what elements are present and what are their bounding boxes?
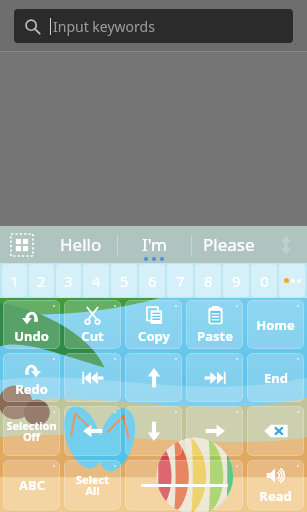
button[interactable]: Space: [125, 460, 243, 510]
button[interactable]: 1: [2, 264, 27, 297]
button[interactable]: Search: [14, 9, 293, 43]
staticText: Paste: [197, 327, 233, 345]
button[interactable]: ABC: [3, 460, 60, 510]
button[interactable]: Keyboard modes: [0, 226, 44, 263]
button[interactable]: 3: [56, 264, 81, 297]
button[interactable]: 5: [111, 264, 137, 297]
button[interactable]: Paste: [186, 300, 243, 349]
staticText: Selection Off: [6, 418, 57, 445]
other: Search: [24, 18, 41, 35]
button[interactable]: 7: [167, 264, 193, 297]
staticText: Home: [256, 316, 295, 334]
button[interactable]: Cut: [64, 300, 121, 349]
staticText: Copy: [138, 327, 170, 345]
button[interactable]: Selection Off: [3, 406, 60, 456]
button[interactable]: Home: [247, 300, 304, 349]
button[interactable]: Copy: [125, 300, 182, 349]
staticText: 2: [37, 271, 46, 291]
staticText: I'm: [142, 233, 167, 256]
button[interactable]: Read: [247, 460, 304, 510]
button[interactable]: Right: [186, 406, 243, 456]
staticText: 0: [260, 271, 269, 291]
staticText: Undo: [14, 327, 49, 345]
button[interactable]: End: [247, 353, 304, 402]
button[interactable]: Up: [125, 353, 182, 402]
button[interactable]: 4: [83, 264, 109, 297]
staticText: 8: [204, 271, 213, 291]
button[interactable]: 8: [195, 264, 221, 297]
staticText: 1: [10, 271, 19, 291]
button[interactable]: Down: [125, 406, 182, 456]
staticText: Hello: [60, 233, 102, 256]
button[interactable]: 2: [29, 264, 54, 297]
button[interactable]: Left: [64, 406, 121, 456]
staticText: 7: [176, 271, 185, 291]
staticText: Read: [259, 487, 292, 505]
staticText: 9: [232, 271, 241, 291]
staticText: 5: [120, 271, 129, 291]
button[interactable]: More: [279, 264, 305, 297]
staticText: Cut: [81, 327, 104, 345]
button[interactable]: 9: [223, 264, 249, 297]
staticText: Redo: [15, 380, 48, 398]
staticText: 3: [64, 271, 73, 291]
button[interactable]: Skip backward: [64, 353, 121, 402]
staticText: 4: [92, 271, 101, 291]
button[interactable]: Hello: [44, 226, 117, 263]
button[interactable]: Delete: [247, 406, 304, 456]
button[interactable]: Expand suggestions: [265, 226, 307, 263]
button[interactable]: Please: [192, 226, 265, 263]
button[interactable]: 0: [251, 264, 277, 297]
button[interactable]: Skip forward: [186, 353, 243, 402]
button[interactable]: 6: [139, 264, 165, 297]
button[interactable]: Redo: [3, 353, 60, 402]
button[interactable]: Undo: [3, 300, 60, 349]
staticText: Please: [203, 233, 255, 256]
staticText: Input keywords: [53, 17, 155, 36]
staticText: ABC: [19, 476, 45, 494]
staticText: Select All: [76, 472, 109, 499]
button[interactable]: Select All: [64, 460, 121, 510]
button[interactable]: I'm: [118, 226, 191, 263]
staticText: 6: [148, 271, 157, 291]
staticText: End: [264, 369, 288, 387]
